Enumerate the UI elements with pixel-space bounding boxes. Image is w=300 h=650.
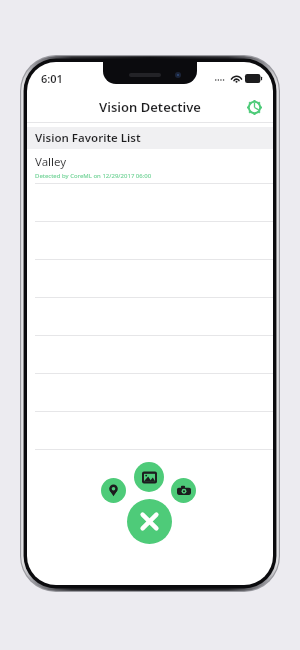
button[interactable]: Close menu — [127, 499, 172, 544]
staticText: 6:01 — [41, 71, 63, 86]
staticText: Valley — [35, 154, 67, 170]
staticText: Vision Detective — [99, 98, 201, 116]
button[interactable]: Take photo — [171, 478, 196, 503]
staticText: Vision Favorite List — [35, 130, 141, 146]
button[interactable]: Settings — [243, 96, 265, 118]
button[interactable]: Choose photo — [134, 462, 164, 492]
button[interactable]: Valley — [27, 149, 273, 184]
button[interactable]: Add location — [101, 478, 126, 503]
staticText: Detected by CoreML on 12/29/2017 06:00 — [35, 172, 152, 180]
